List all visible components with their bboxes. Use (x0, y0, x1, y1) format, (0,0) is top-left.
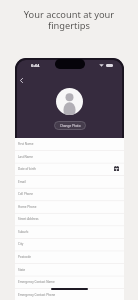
button[interactable]: Change Photo (54, 121, 86, 130)
button[interactable]: Suburb (15, 226, 124, 239)
button[interactable]: Email (15, 176, 124, 189)
staticText: Home Phone (18, 205, 37, 209)
button[interactable]: Emergency Contact Phone (15, 289, 124, 300)
staticText: City (18, 242, 24, 246)
button[interactable]: State (15, 264, 124, 277)
staticText: Street Address (18, 217, 39, 221)
button[interactable]: Back (15, 74, 27, 86)
button[interactable]: Street Address (15, 213, 124, 226)
staticText: Your account at your fingertips (4, 8, 134, 32)
staticText: Cell Phone (18, 192, 33, 196)
button[interactable]: Emergency Contact Name (15, 276, 124, 289)
staticText: State (18, 268, 26, 272)
staticText: Postcode (18, 255, 31, 259)
button[interactable]: Date of birth (15, 163, 124, 176)
staticText: Suburb (18, 230, 29, 234)
button[interactable]: Home Phone (15, 201, 124, 214)
staticText: Email (18, 180, 26, 184)
staticText: Date of birth (18, 167, 36, 171)
button[interactable]: City (15, 238, 124, 251)
button[interactable]: Postcode (15, 251, 124, 264)
staticText: Emergency Contact Name (18, 280, 55, 284)
button[interactable]: Last Name (15, 151, 124, 164)
staticText: Change Photo (60, 124, 81, 128)
button[interactable]: First Name (15, 138, 124, 151)
staticText: 6:44 (31, 63, 40, 69)
staticText: Last Name (18, 155, 34, 159)
staticText: Emergency Contact Phone (18, 293, 56, 297)
staticText: First Name (18, 142, 34, 146)
button[interactable]: Cell Phone (15, 188, 124, 201)
